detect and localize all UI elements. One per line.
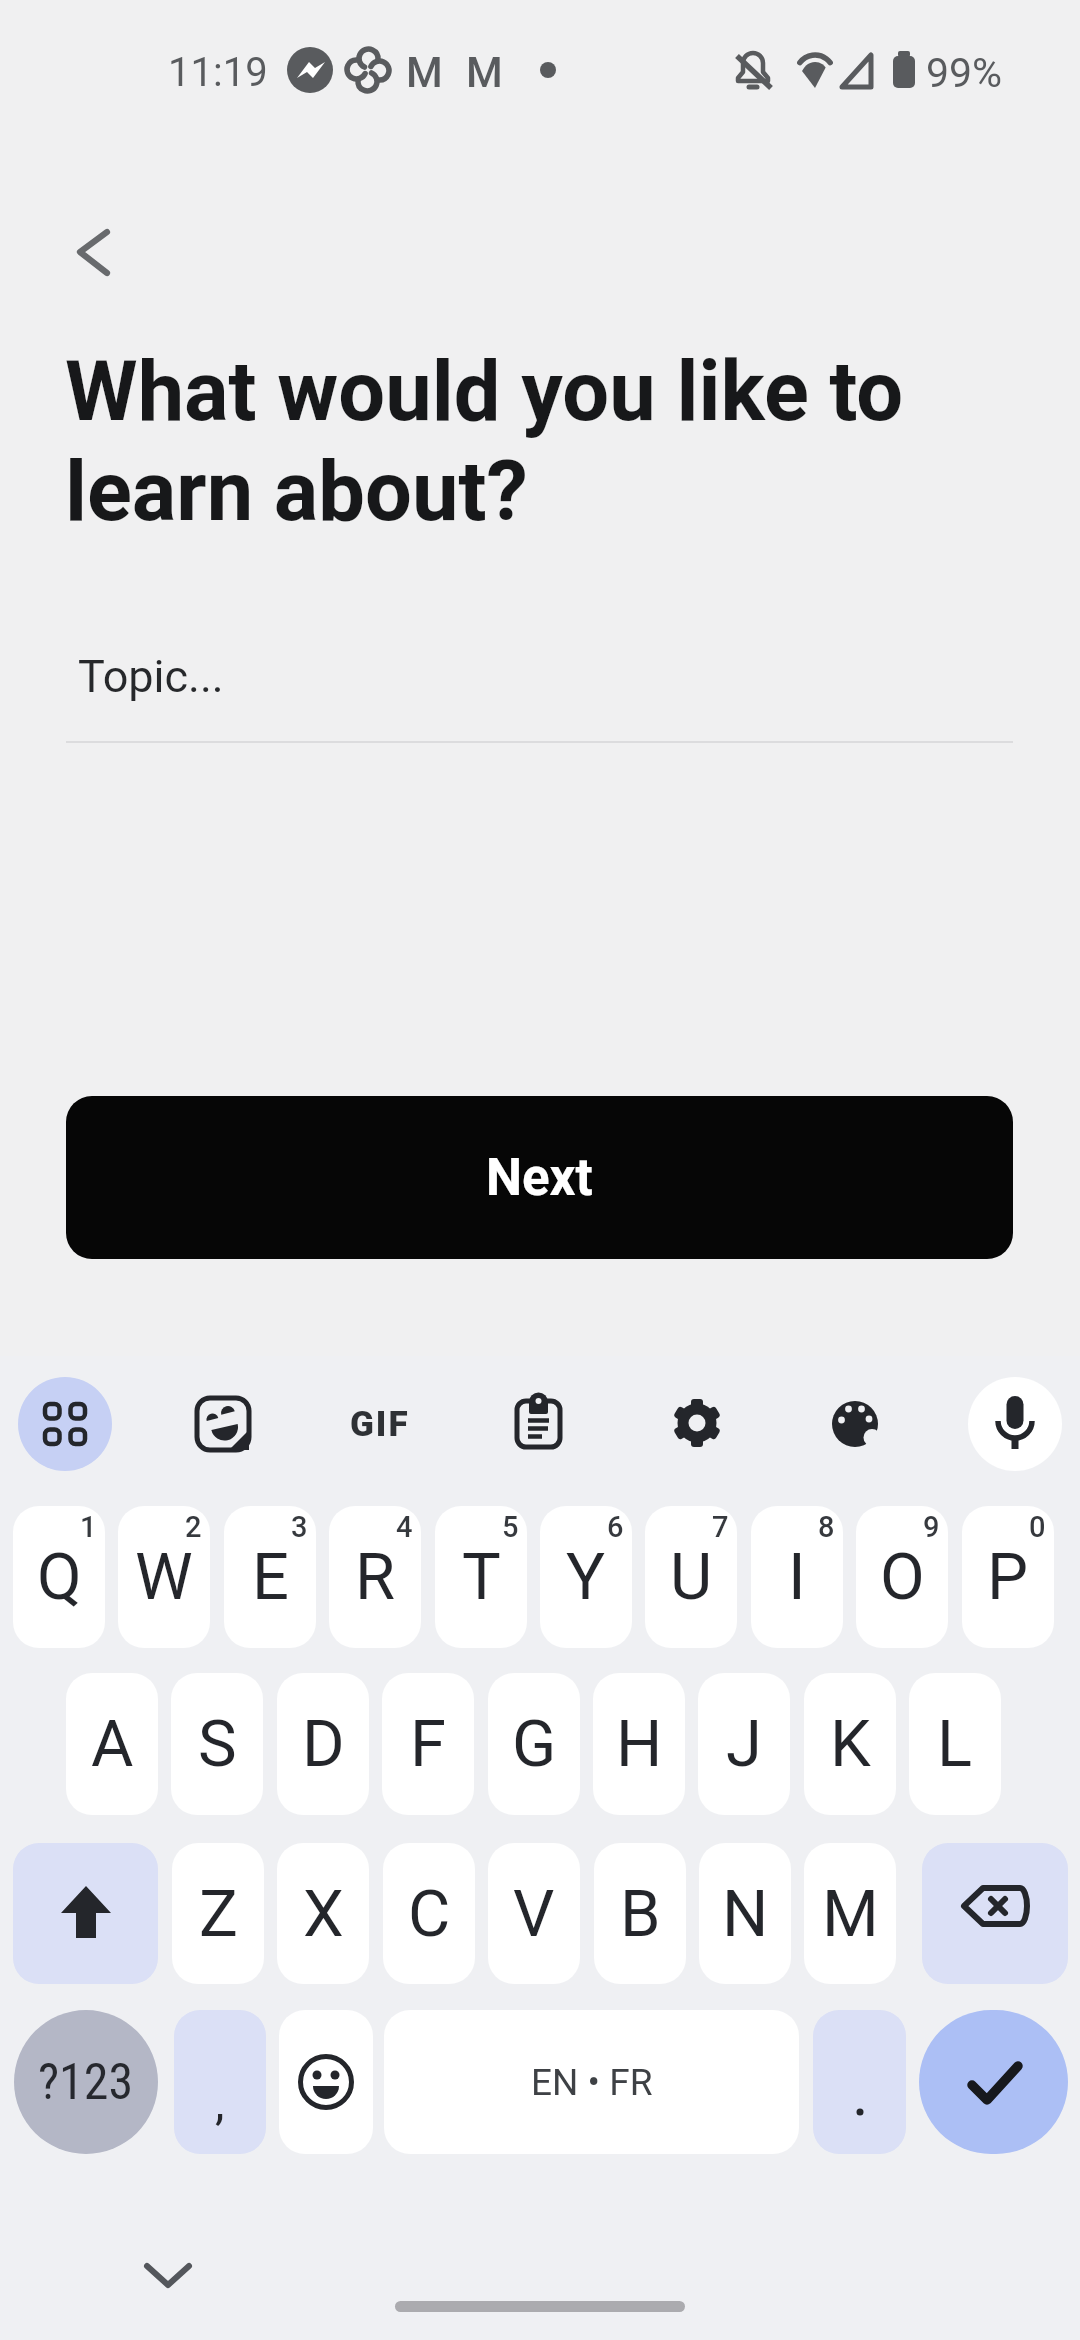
button[interactable] [279,2010,373,2154]
staticText: Next [486,1148,593,1208]
staticText: , [215,2074,225,2130]
staticText: D [302,1706,345,1782]
button[interactable] [13,1843,158,1984]
button[interactable] [922,1843,1068,1984]
button[interactable]: GIF [333,1377,427,1471]
staticText: Z [199,1876,238,1952]
button[interactable]: ?123 [14,2010,158,2154]
staticText: R [355,1539,396,1615]
button[interactable] [176,1377,270,1471]
button[interactable]: , [174,2010,266,2154]
staticText: J [726,1706,762,1782]
staticText: N [722,1876,769,1952]
staticText: W [135,1539,193,1615]
button[interactable]: C [383,1843,475,1984]
button[interactable] [808,1377,902,1471]
staticText: H [616,1706,663,1782]
button[interactable]: W [118,1506,210,1648]
button[interactable]: A [66,1673,158,1815]
button[interactable] [492,1377,586,1471]
button[interactable]: K [804,1673,896,1815]
staticText: EN • FR [531,2061,653,2104]
staticText: M [406,48,443,97]
staticText: 99% [926,49,1003,97]
button[interactable]: Y [540,1506,632,1648]
staticText: 3 [291,1510,308,1544]
button[interactable]: B [594,1843,686,1984]
staticText: 7 [712,1510,729,1544]
staticText: 1 [80,1510,97,1544]
staticText: E [252,1539,289,1615]
button[interactable]: M [804,1843,896,1984]
button[interactable]: D [277,1673,369,1815]
button[interactable] [18,1377,112,1471]
staticText: T [462,1539,501,1615]
button[interactable]: S [171,1673,263,1815]
button[interactable]: G [488,1673,580,1815]
button[interactable]: R [329,1506,421,1648]
staticText: 4 [396,1510,413,1544]
staticText: V [513,1876,555,1952]
staticText: Q [37,1539,82,1615]
button[interactable]: H [593,1673,685,1815]
staticText: C [408,1876,451,1952]
button[interactable]: N [699,1843,791,1984]
button[interactable]: V [488,1843,580,1984]
staticText: 11:19 [168,49,268,96]
staticText: K [830,1706,871,1782]
button[interactable]: Next [66,1096,1013,1259]
button[interactable]: U [645,1506,737,1648]
staticText: B [620,1876,661,1952]
staticText: O [880,1539,925,1615]
button[interactable]: X [277,1843,369,1984]
button[interactable]: F [382,1673,474,1815]
button[interactable]: J [698,1673,790,1815]
staticText: 9 [923,1510,940,1544]
staticText: P [987,1539,1029,1615]
button[interactable] [968,1377,1062,1471]
staticText: 0 [1029,1510,1046,1544]
button[interactable]: I [751,1506,843,1648]
button[interactable]: O [856,1506,948,1648]
staticText: F [410,1706,446,1782]
button[interactable] [650,1377,744,1471]
staticText: M [466,48,503,97]
staticText: 8 [818,1510,835,1544]
button[interactable]: L [909,1673,1001,1815]
button[interactable]: Z [172,1843,264,1984]
staticText: S [198,1706,237,1782]
staticText: What would you like to learn about? [65,343,904,540]
staticText: M [822,1876,879,1952]
staticText: 6 [607,1510,624,1544]
button[interactable]: T [435,1506,527,1648]
button[interactable] [919,2010,1068,2154]
staticText: ?123 [38,2053,134,2112]
staticText: 5 [502,1510,519,1544]
button[interactable] [59,216,131,288]
button[interactable]: P [962,1506,1054,1648]
staticText: U [670,1539,713,1615]
button[interactable]: E [224,1506,316,1648]
staticText: GIF [350,1404,410,1445]
button[interactable] [813,2010,906,2154]
staticText: 2 [185,1510,202,1544]
staticText: Y [566,1539,606,1615]
staticText: A [91,1706,134,1782]
staticText: I [788,1539,806,1615]
staticText: X [303,1876,344,1952]
staticText: L [937,1706,973,1782]
staticText: G [512,1706,557,1782]
button[interactable]: Q [13,1506,105,1648]
staticText: Topic... [78,650,224,703]
button[interactable]: EN • FR [384,2010,799,2154]
